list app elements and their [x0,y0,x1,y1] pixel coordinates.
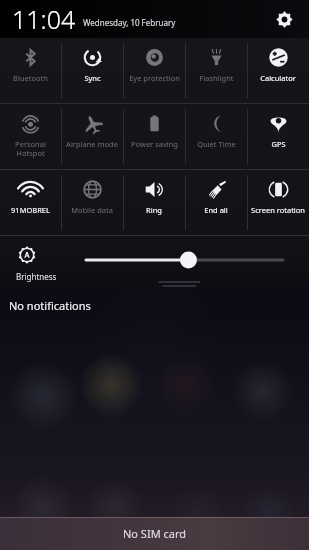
staticText: 11:04 [12,2,76,36]
staticText: Screen rotation [251,205,305,215]
staticText: Quiet Time [197,139,236,149]
button[interactable]: Power saving [123,104,185,169]
button[interactable]: End all [185,170,247,235]
button[interactable]: Screen rotation [247,170,309,235]
staticText: Calculator [260,73,296,83]
button[interactable]: Brightness slider [86,244,283,284]
staticText: No notifications [9,298,91,313]
staticText: End all [204,205,228,215]
button[interactable]: GPS [247,104,309,169]
staticText: Airplane mode [66,139,118,149]
button[interactable]: Sync [61,38,123,103]
staticText: No SIM card [123,526,187,541]
button[interactable]: Auto brightness [16,246,57,282]
button[interactable]: Airplane mode [61,104,123,169]
button[interactable]: Quiet Time [185,104,247,169]
staticText: Power saving [131,139,178,149]
staticText: GPS [271,139,286,149]
button[interactable]: 91MOBREL [0,170,61,235]
staticText: Mobile data [71,205,113,215]
staticText: Flashlight [199,73,234,83]
staticText: Eye protection [129,73,180,83]
staticText: Ring [146,205,162,215]
button[interactable]: Ring [123,170,185,235]
staticText: Bluetooth [13,73,48,83]
button[interactable]: Flashlight [185,38,247,103]
staticText: 91MOBREL [11,205,50,215]
button[interactable]: Eye protection [123,38,185,103]
button[interactable]: Bluetooth [0,38,61,103]
button[interactable]: Settings [269,4,299,34]
staticText: Wednesday, 10 February [83,17,176,28]
staticText: Sync [84,73,101,83]
staticText: Brightness [16,271,57,282]
button[interactable]: Mobile data [61,170,123,235]
button[interactable]: Calculator [247,38,309,103]
button[interactable]: No SIM card [0,517,309,550]
button[interactable]: Personal Hotspot [0,104,61,169]
staticText: Personal Hotspot [15,139,46,158]
